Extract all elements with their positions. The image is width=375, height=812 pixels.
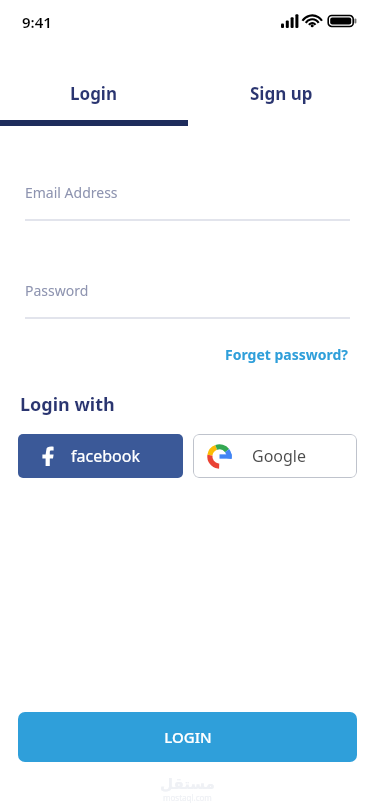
- button[interactable]: Forget password?: [223, 341, 351, 368]
- staticText: Sign up: [250, 82, 313, 105]
- button[interactable]: LOGIN: [18, 712, 357, 762]
- button[interactable]: Google: [193, 434, 357, 478]
- staticText: Forget password?: [225, 345, 349, 364]
- button[interactable]: Sign up: [187, 82, 375, 126]
- staticText: Login with: [20, 392, 115, 417]
- staticText: mostaql.com: [163, 792, 212, 803]
- button[interactable]: Login: [0, 82, 187, 126]
- button[interactable]: facebook: [18, 434, 183, 478]
- staticText: Password: [25, 281, 89, 300]
- staticText: LOGIN: [164, 727, 212, 747]
- staticText: مستقل: [160, 775, 215, 792]
- staticText: Login: [70, 82, 118, 105]
- staticText: Google: [252, 445, 307, 467]
- staticText: 9:41: [22, 12, 52, 32]
- button[interactable]: Password: [0, 274, 375, 319]
- button[interactable]: Email Address: [0, 176, 375, 221]
- staticText: Email Address: [25, 183, 118, 202]
- staticText: facebook: [71, 445, 140, 467]
